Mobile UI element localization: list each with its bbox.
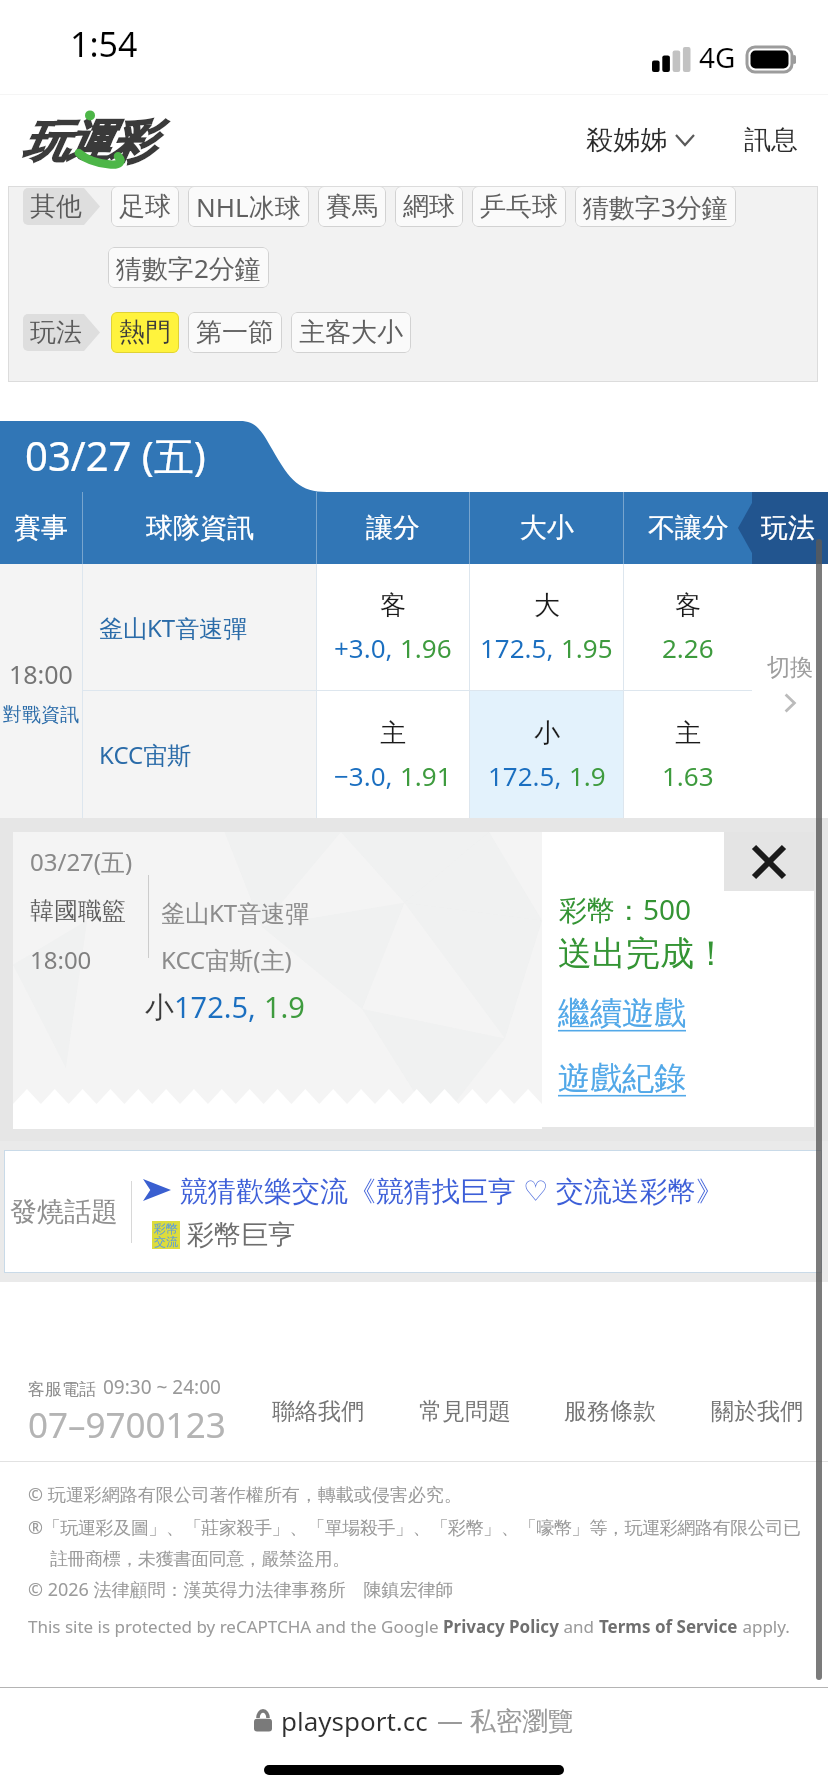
- staticText: 主: [380, 717, 406, 750]
- staticText: 彩幣巨亨: [187, 1218, 295, 1252]
- staticText: 競猜歡樂交流《競猜找巨亨 ♡ 交流送彩幣》: [180, 1171, 724, 1209]
- staticText: 訊息: [744, 123, 798, 157]
- staticText: and: [559, 1615, 599, 1638]
- staticText: 常見問題: [419, 1397, 511, 1426]
- button[interactable]: 常見問題: [415, 1387, 515, 1436]
- staticText: 03/27(五): [30, 845, 133, 878]
- staticText: NHL冰球: [196, 189, 301, 225]
- button[interactable]: 足球: [111, 186, 179, 227]
- staticText: 03/27 (五): [25, 428, 206, 483]
- staticText: 1.96: [400, 630, 452, 665]
- staticText: 4G: [699, 38, 736, 76]
- staticText: 猜數字3分鐘: [583, 189, 728, 225]
- button[interactable]: 對戰資訊: [3, 703, 79, 727]
- staticText: 第一節: [196, 316, 274, 349]
- staticText: −3.0,: [334, 758, 393, 793]
- staticText: 聯絡我們: [272, 1397, 364, 1426]
- staticText: 1.95: [561, 630, 613, 665]
- staticText: 07–9700123: [28, 1401, 226, 1449]
- staticText: 大: [534, 589, 560, 622]
- staticText: 殺姊姊: [586, 123, 667, 157]
- staticText: 球隊資訊: [146, 511, 254, 545]
- button[interactable]: KCC宙斯: [99, 738, 192, 771]
- button[interactable]: 賽馬: [318, 186, 386, 227]
- staticText: 彩幣 交流: [154, 1221, 178, 1249]
- button[interactable]: 競猜歡樂交流《競猜找巨亨 ♡ 交流送彩幣》: [143, 1171, 724, 1209]
- staticText: 大小: [520, 511, 574, 545]
- staticText: This site is protected by reCAPTCHA and …: [28, 1615, 443, 1638]
- staticText: 小: [534, 717, 560, 750]
- button[interactable]: 聯絡我們: [268, 1387, 368, 1436]
- staticText: 09:30 ~ 24:00: [103, 1374, 221, 1400]
- staticText: 客服電話: [28, 1379, 96, 1400]
- staticText: 主: [675, 717, 701, 750]
- staticText: 切換: [767, 653, 813, 682]
- staticText: 小: [145, 989, 174, 1026]
- button[interactable]: 服務條款: [560, 1387, 660, 1436]
- button[interactable]: Terms of Service: [599, 1615, 738, 1638]
- staticText: 服務條款: [564, 1397, 656, 1426]
- staticText: 熱門: [119, 316, 171, 349]
- staticText: 玩運彩: [22, 114, 153, 171]
- staticText: 其他: [30, 190, 82, 223]
- button[interactable]: 客: [624, 564, 752, 690]
- staticText: 足球: [119, 190, 171, 223]
- button[interactable]: 釜山KT音速彈: [99, 611, 248, 644]
- button[interactable]: 切換: [767, 653, 813, 713]
- button[interactable]: 遊戲紀錄: [558, 1058, 686, 1098]
- button[interactable]: 第一節: [188, 312, 282, 353]
- button[interactable]: Privacy Policy: [443, 1615, 559, 1638]
- button[interactable]: 小: [470, 691, 623, 818]
- staticText: 1:54: [70, 21, 138, 67]
- staticText: 發燒話題: [10, 1195, 118, 1229]
- button[interactable]: Close: [724, 832, 814, 891]
- staticText: apply.: [738, 1615, 790, 1638]
- button[interactable]: 大: [470, 564, 623, 690]
- button[interactable]: 關於我們: [707, 1387, 807, 1436]
- staticText: 彩幣：500: [559, 890, 692, 928]
- staticText: 賽馬: [326, 190, 378, 223]
- button[interactable]: 殺姊姊: [582, 115, 698, 165]
- button[interactable]: 熱門: [111, 312, 179, 353]
- staticText: © 玩運彩網路有限公司著作權所有，轉載或侵害必究。: [28, 1482, 462, 1507]
- staticText: 1.91: [400, 758, 452, 793]
- staticText: 玩法: [761, 511, 815, 545]
- staticText: 1.63: [662, 758, 714, 793]
- button[interactable]: NHL冰球: [188, 186, 309, 227]
- button[interactable]: 繼續遊戲: [558, 993, 686, 1033]
- staticText: 18:00: [9, 657, 73, 691]
- staticText: 1.9: [264, 987, 305, 1026]
- staticText: 2.26: [662, 630, 714, 665]
- staticText: 猜數字2分鐘: [116, 250, 261, 286]
- staticText: 172.5,: [174, 987, 256, 1026]
- staticText: playsport.cc: [281, 1703, 428, 1738]
- button[interactable]: 乒乓球: [472, 186, 566, 227]
- staticText: 客: [675, 589, 701, 622]
- button[interactable]: 猜數字2分鐘: [108, 247, 269, 288]
- button[interactable]: 客: [317, 564, 469, 690]
- button[interactable]: 主: [624, 691, 752, 818]
- staticText: 韓國職籃: [30, 896, 126, 926]
- staticText: +3.0,: [334, 630, 393, 665]
- staticText: 讓分: [366, 511, 420, 545]
- staticText: 172.5,: [488, 758, 562, 793]
- staticText: ®「玩運彩及圖」、「莊家殺手」、「單場殺手」、「彩幣」、「嚎幣」等，玩運彩網路有…: [28, 1515, 801, 1570]
- staticText: 客: [380, 589, 406, 622]
- staticText: — 私密瀏覽: [437, 1702, 574, 1738]
- staticText: 網球: [403, 190, 455, 223]
- staticText: KCC宙斯(主): [161, 943, 292, 976]
- button[interactable]: 網球: [395, 186, 463, 227]
- staticText: 關於我們: [711, 1397, 803, 1426]
- staticText: 不讓分: [648, 511, 729, 545]
- button[interactable]: 主: [317, 691, 469, 818]
- staticText: © 2026 法律顧問：漢英得力法律事務所 陳鎮宏律師: [28, 1577, 454, 1602]
- staticText: 主客大小: [299, 316, 403, 349]
- staticText: 釜山KT音速彈: [161, 896, 310, 929]
- button[interactable]: 主客大小: [291, 312, 411, 353]
- staticText: 乒乓球: [480, 190, 558, 223]
- staticText: 1.9: [569, 758, 606, 793]
- staticText: 賽事: [14, 511, 68, 545]
- button[interactable]: 訊息: [740, 115, 802, 165]
- button[interactable]: 猜數字3分鐘: [575, 186, 736, 227]
- staticText: 送出完成！: [558, 932, 728, 975]
